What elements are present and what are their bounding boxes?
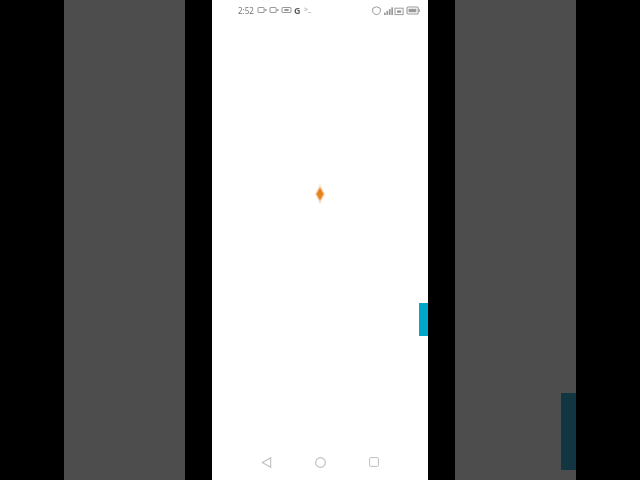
- button[interactable]: Home: [302, 444, 338, 480]
- staticText: >_: [304, 5, 312, 15]
- staticText: G: [294, 4, 301, 16]
- button[interactable]: Back: [248, 444, 284, 480]
- staticText: 2:52: [238, 5, 254, 16]
- button[interactable]: Recent apps: [356, 444, 392, 480]
